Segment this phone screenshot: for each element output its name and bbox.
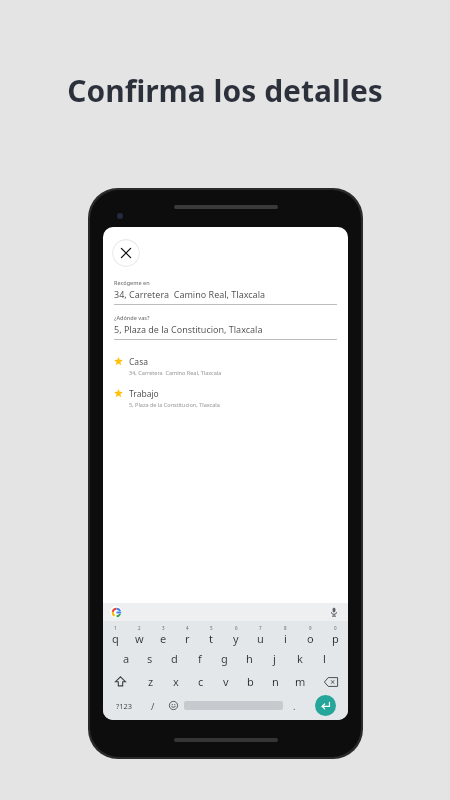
button[interactable]: f — [187, 647, 212, 670]
button[interactable]: 9 — [298, 624, 323, 647]
staticText: f — [198, 651, 202, 666]
button[interactable]: m — [288, 670, 313, 693]
staticText: o — [307, 631, 314, 646]
staticText: j — [273, 651, 276, 666]
staticText: d — [171, 651, 178, 666]
button[interactable]: Backspace — [313, 670, 348, 693]
button[interactable]: 3 — [151, 624, 175, 647]
staticText: b — [247, 674, 254, 689]
button[interactable]: Enter — [315, 695, 336, 716]
staticText: 5, Plaza de la Constitucion, Tlaxcala — [129, 401, 220, 408]
staticText: n — [272, 674, 279, 689]
button[interactable]: c — [188, 670, 213, 693]
staticText: t — [209, 631, 213, 646]
staticText: . — [293, 700, 296, 712]
staticText: u — [257, 631, 264, 646]
button[interactable]: Trabajo — [103, 386, 348, 410]
button[interactable]: 7 — [248, 624, 273, 647]
staticText: 7 — [259, 625, 262, 631]
button[interactable]: n — [263, 670, 288, 693]
staticText: 4 — [186, 625, 189, 631]
staticText: i — [284, 631, 287, 646]
button[interactable]: Emoji — [163, 693, 184, 718]
staticText: / — [151, 700, 155, 712]
button[interactable]: h — [237, 647, 262, 670]
button[interactable]: Google — [110, 606, 122, 618]
staticText: m — [295, 674, 306, 689]
staticText: s — [147, 651, 153, 666]
button[interactable]: . — [283, 693, 306, 718]
button[interactable]: k — [287, 647, 312, 670]
button[interactable]: 0 — [323, 624, 348, 647]
button[interactable]: / — [142, 693, 163, 718]
button[interactable]: g — [212, 647, 237, 670]
button[interactable]: v — [213, 670, 238, 693]
staticText: h — [246, 651, 253, 666]
staticText: w — [135, 631, 144, 646]
button[interactable]: ?123 — [107, 693, 142, 718]
button[interactable]: j — [262, 647, 287, 670]
staticText: 8 — [284, 625, 287, 631]
staticText: Confirma los detalles — [0, 70, 450, 111]
button[interactable]: 5 — [199, 624, 223, 647]
staticText: Trabajo — [129, 388, 159, 400]
staticText: 2 — [138, 625, 141, 631]
button[interactable]: 8 — [273, 624, 298, 647]
staticText: p — [332, 631, 339, 646]
staticText: z — [148, 674, 154, 689]
button[interactable]: Voice input — [328, 606, 340, 618]
button[interactable]: Cerrar — [112, 239, 140, 267]
button[interactable]: b — [238, 670, 263, 693]
button[interactable]: x — [163, 670, 188, 693]
staticText: 3 — [162, 625, 165, 631]
button[interactable]: 6 — [223, 624, 248, 647]
staticText: 34, Carretera Camino Real, Tlaxcala — [129, 369, 222, 376]
button[interactable]: l — [312, 647, 337, 670]
staticText: 5 — [210, 625, 213, 631]
staticText: ?123 — [116, 701, 133, 711]
staticText: g — [221, 651, 228, 666]
staticText: k — [297, 651, 303, 666]
button[interactable]: d — [162, 647, 187, 670]
staticText: a — [123, 651, 130, 666]
staticText: Casa — [129, 356, 148, 368]
staticText: 34, Carretera Camino Real, Tlaxcala — [114, 288, 266, 300]
staticText: c — [198, 674, 204, 689]
staticText: 6 — [235, 625, 238, 631]
button[interactable]: 4 — [175, 624, 199, 647]
staticText: l — [323, 651, 326, 666]
staticText: q — [112, 631, 119, 646]
staticText: 9 — [309, 625, 312, 631]
button[interactable]: z — [138, 670, 163, 693]
staticText: r — [185, 631, 190, 646]
button[interactable]: 2 — [127, 624, 151, 647]
button[interactable]: Casa — [103, 354, 348, 378]
button[interactable]: a — [114, 647, 138, 670]
staticText: 0 — [334, 625, 337, 631]
button[interactable]: Shift — [103, 670, 138, 693]
staticText: 5, Plaza de la Constitucion, Tlaxcala — [114, 323, 263, 335]
staticText: x — [173, 674, 179, 689]
staticText: 1 — [114, 625, 117, 631]
staticText: ¿Adónde vas? — [114, 314, 150, 321]
button[interactable]: 1 — [103, 624, 127, 647]
staticText: y — [233, 631, 239, 646]
button[interactable]: s — [138, 647, 162, 670]
staticText: v — [223, 674, 229, 689]
staticText: Recógeme en — [114, 279, 150, 286]
staticText: e — [160, 631, 167, 646]
